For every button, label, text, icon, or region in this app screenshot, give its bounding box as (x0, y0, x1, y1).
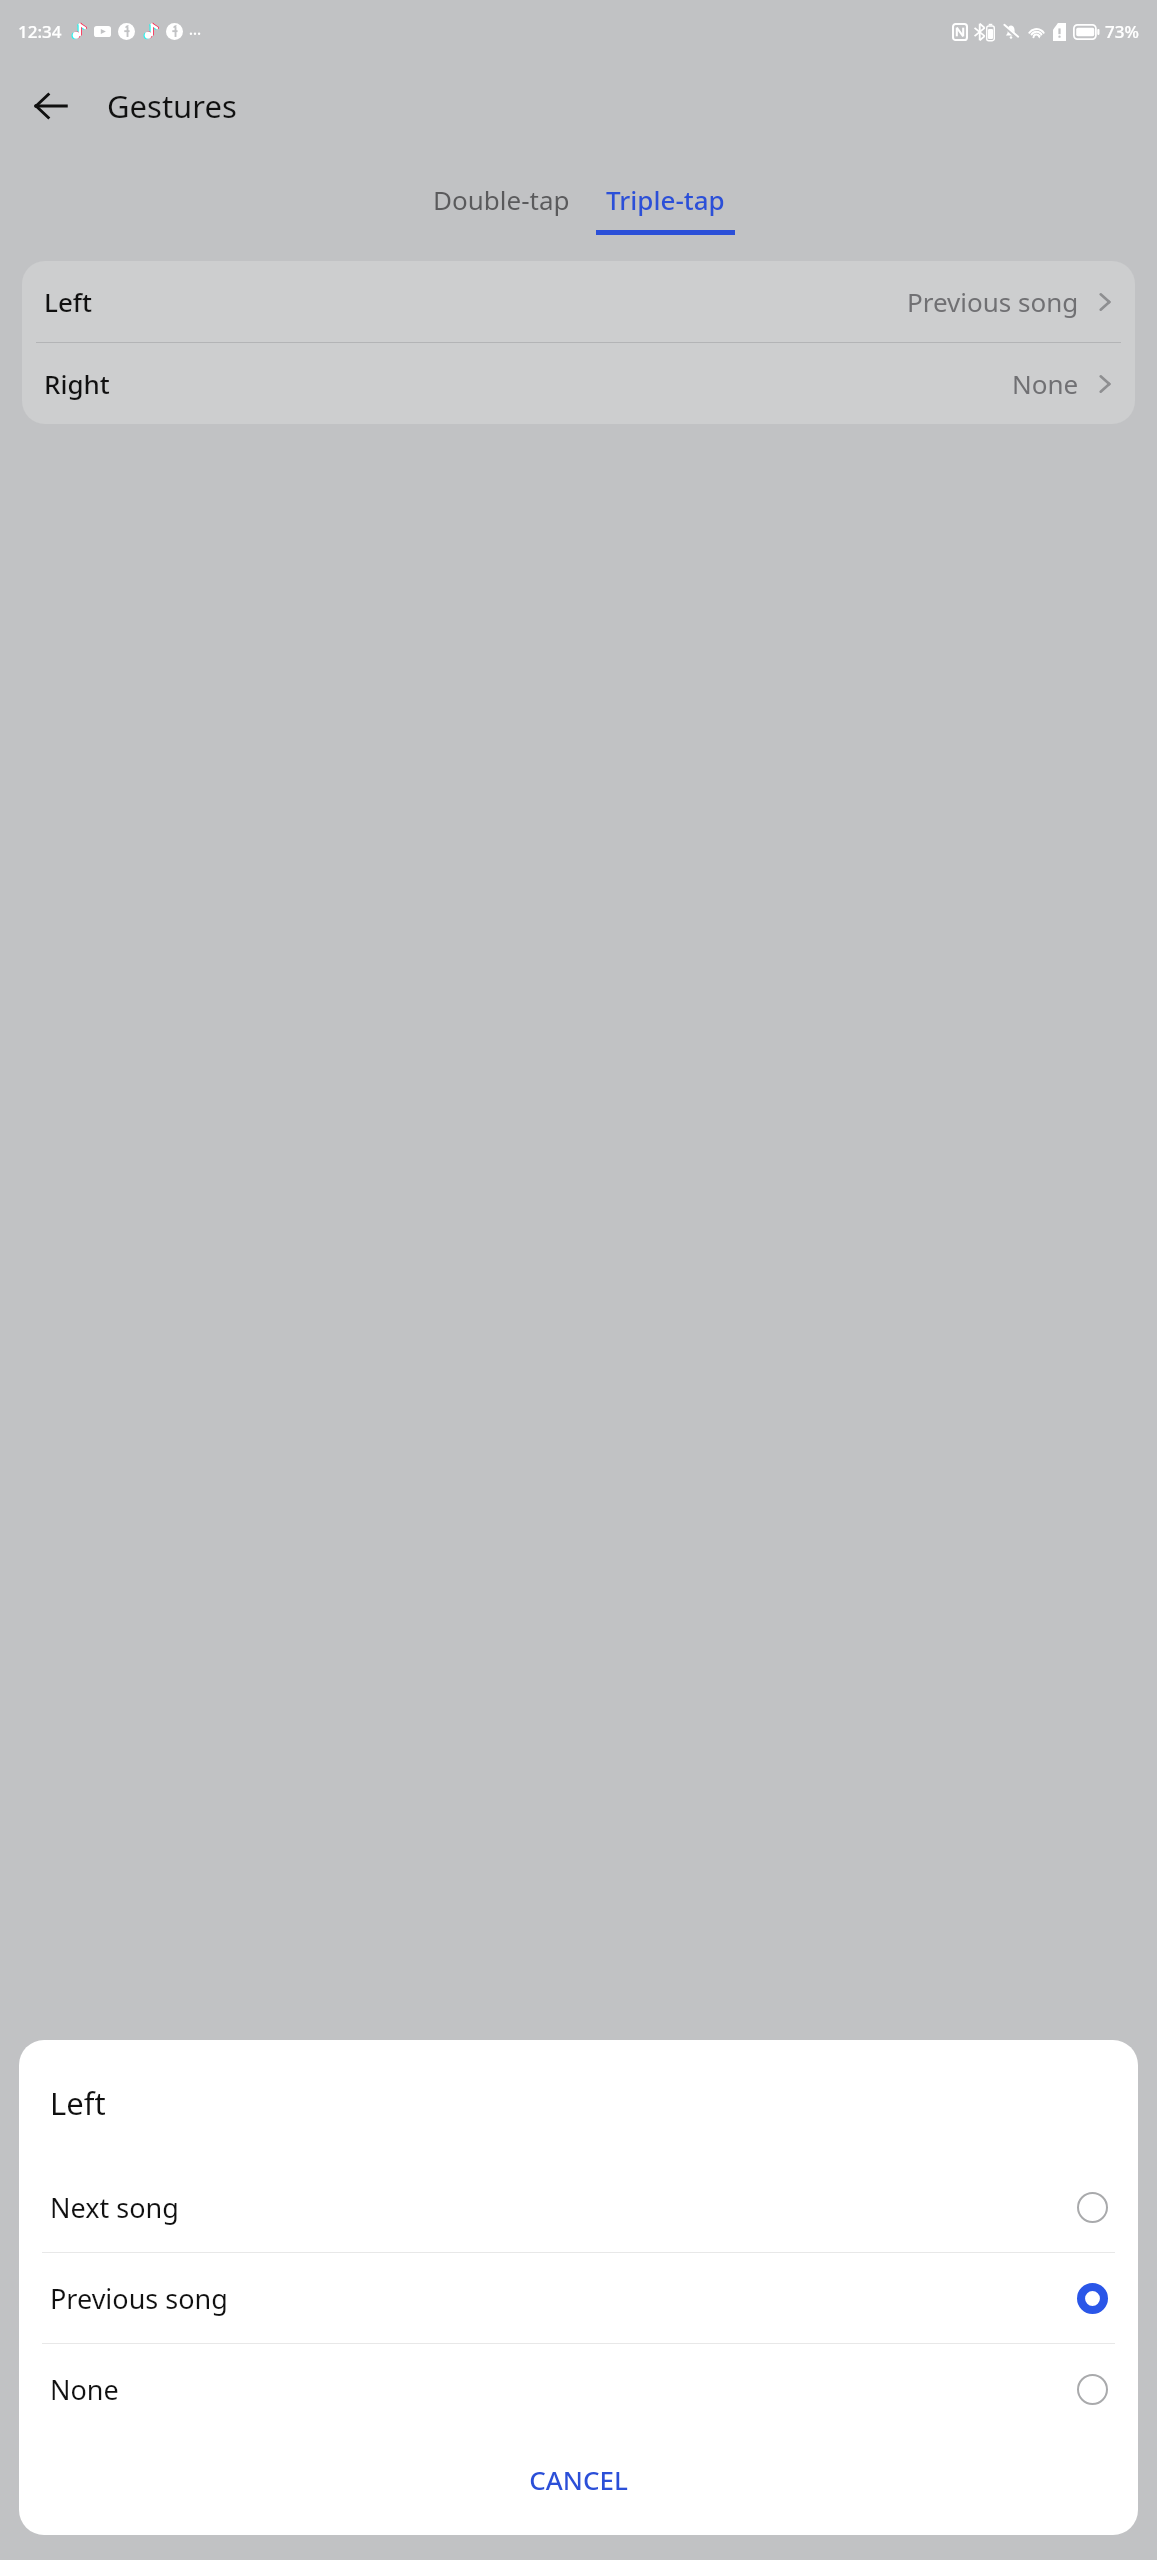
staticText: Next song (50, 2189, 179, 2226)
staticText: None (50, 2371, 119, 2408)
button[interactable]: Left (22, 261, 1135, 342)
staticText: Double-tap (433, 182, 570, 217)
staticText: Left (50, 2082, 106, 2124)
staticText: Triple-tap (606, 182, 725, 217)
button[interactable]: Next song (19, 2162, 1138, 2252)
button[interactable]: Double-tap (419, 176, 584, 223)
button[interactable]: None (19, 2344, 1138, 2434)
staticText: CANCEL (529, 2462, 628, 2497)
staticText: 73% (1105, 20, 1139, 43)
button[interactable]: Triple-tap (592, 176, 739, 235)
staticText: Previous song (907, 284, 1079, 319)
staticText: Gestures (107, 85, 237, 127)
staticText: Right (44, 366, 110, 401)
staticText: Previous song (50, 2280, 228, 2317)
button[interactable]: Right (22, 343, 1135, 424)
button[interactable]: Back (20, 75, 82, 137)
button[interactable]: CANCEL (507, 2450, 650, 2509)
staticText: None (1012, 366, 1079, 401)
button[interactable]: Previous song (19, 2253, 1138, 2343)
staticText: Left (44, 284, 93, 319)
staticText: 12:34 (18, 20, 62, 43)
